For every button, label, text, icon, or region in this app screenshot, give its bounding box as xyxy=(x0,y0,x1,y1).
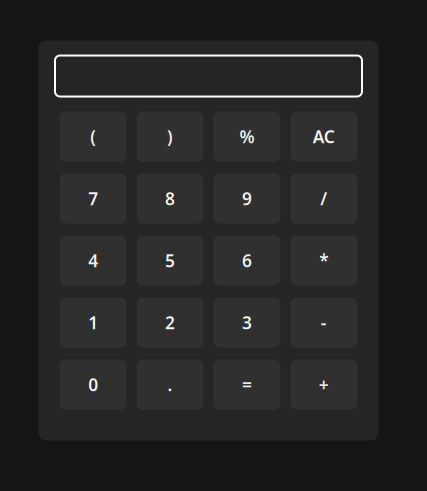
staticText: 1 xyxy=(88,311,98,334)
staticText: AC xyxy=(313,125,335,148)
button[interactable]: 4 xyxy=(60,235,126,285)
staticText: / xyxy=(320,187,327,210)
staticText: 2 xyxy=(165,311,175,334)
button[interactable]: All clear xyxy=(291,111,357,161)
button[interactable]: 2 xyxy=(137,297,203,347)
staticText: 3 xyxy=(242,311,252,334)
staticText: = xyxy=(242,373,252,396)
button[interactable]: Close parenthesis xyxy=(137,111,203,161)
staticText: - xyxy=(321,311,327,334)
button[interactable]: Multiply xyxy=(291,235,357,285)
button[interactable]: 8 xyxy=(137,173,203,223)
staticText: 6 xyxy=(242,249,252,272)
button[interactable]: 3 xyxy=(214,297,280,347)
staticText: 9 xyxy=(242,187,252,210)
button[interactable]: 5 xyxy=(137,235,203,285)
button[interactable]: 1 xyxy=(60,297,126,347)
staticText: 5 xyxy=(165,249,175,272)
button[interactable]: 0 xyxy=(60,359,126,409)
button[interactable]: Percent xyxy=(214,111,280,161)
staticText: 8 xyxy=(165,187,175,210)
staticText: 0 xyxy=(88,373,98,396)
button[interactable]: Subtract xyxy=(291,297,357,347)
button[interactable]: 7 xyxy=(60,173,126,223)
button[interactable]: Add xyxy=(291,359,357,409)
staticText: % xyxy=(239,125,254,148)
button[interactable]: Equals xyxy=(214,359,280,409)
button[interactable]: 9 xyxy=(214,173,280,223)
staticText: + xyxy=(319,373,329,396)
staticText: . xyxy=(168,373,173,396)
button[interactable]: Decimal point xyxy=(137,359,203,409)
staticText: 4 xyxy=(88,249,98,272)
button[interactable]: 6 xyxy=(214,235,280,285)
button[interactable]: Divide xyxy=(291,173,357,223)
staticText: ( xyxy=(90,125,96,148)
button[interactable]: Open parenthesis xyxy=(60,111,126,161)
staticText: ) xyxy=(167,125,173,148)
staticText: 7 xyxy=(88,187,98,210)
staticText: * xyxy=(319,249,328,272)
